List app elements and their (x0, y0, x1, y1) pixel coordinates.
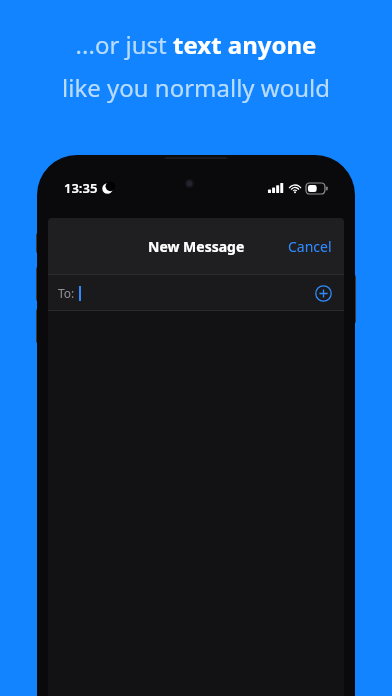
staticText: Cancel (288, 237, 332, 256)
button[interactable]: To: (48, 275, 344, 310)
staticText: New Message (148, 237, 245, 256)
button[interactable]: Add contact (310, 280, 336, 306)
staticText: 13:35 (64, 179, 98, 197)
staticText: ...or just text anyone (14, 28, 378, 61)
staticText: like you normally would (14, 71, 378, 104)
staticText: To: (58, 285, 75, 301)
button[interactable]: Cancel (276, 229, 344, 264)
